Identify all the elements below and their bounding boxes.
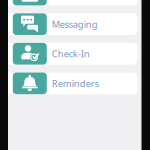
button[interactable]: Documents: [4, 0, 137, 5]
button[interactable]: Check-In: [4, 43, 137, 65]
button[interactable]: Messaging: [4, 13, 137, 35]
staticText: Reminders: [52, 77, 99, 90]
button[interactable]: Reminders: [4, 72, 137, 94]
staticText: Check-In: [52, 48, 90, 60]
staticText: Messaging: [52, 18, 98, 30]
